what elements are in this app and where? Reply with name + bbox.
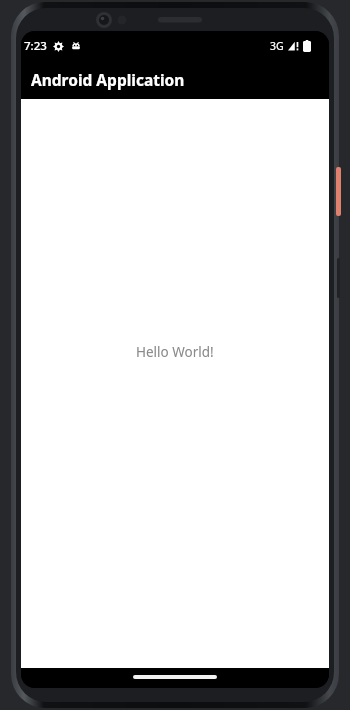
staticText: 3G	[270, 39, 284, 53]
staticText: Hello World!	[136, 343, 214, 361]
button[interactable]: Home gesture handle	[133, 675, 217, 679]
button[interactable]: Android Application	[21, 60, 329, 99]
staticText: 7:23	[24, 38, 47, 54]
staticText: Android Application	[31, 69, 185, 90]
